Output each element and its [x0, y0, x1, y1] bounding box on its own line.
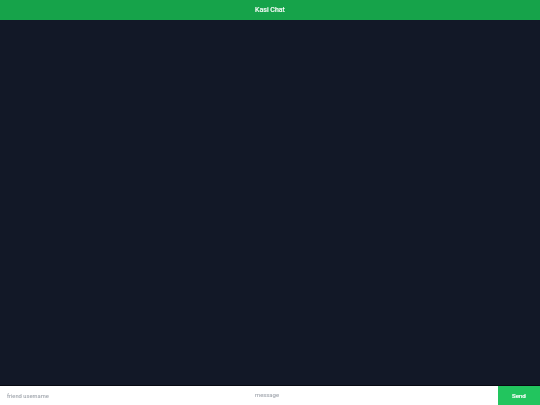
staticText: message [255, 392, 280, 399]
staticText: Send [512, 392, 526, 399]
button[interactable]: Friend username input [0, 386, 249, 405]
staticText: friend username [7, 393, 49, 400]
button[interactable]: Send [498, 386, 540, 405]
staticText: Kasi Chat [255, 6, 285, 14]
button[interactable]: Message input [249, 386, 498, 405]
